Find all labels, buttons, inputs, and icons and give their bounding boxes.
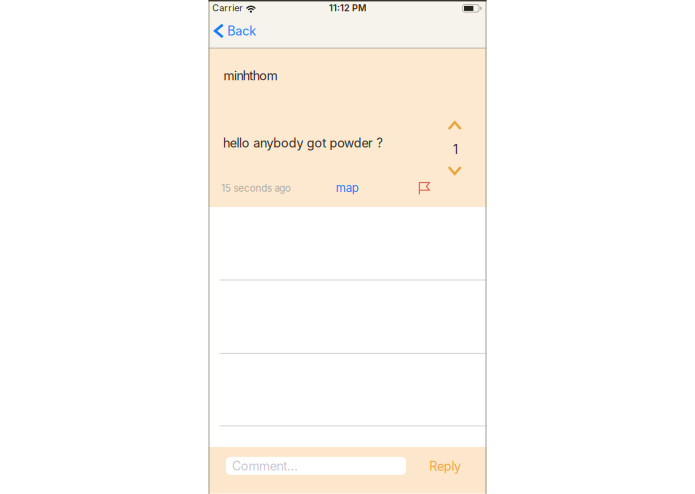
button[interactable]: Upvote — [449, 122, 461, 129]
staticText: Comment... — [232, 458, 298, 473]
staticText: 11:12 PM — [329, 2, 366, 13]
button[interactable]: Downvote — [449, 167, 461, 174]
staticText: map — [336, 181, 359, 195]
button[interactable]: Reply — [429, 459, 461, 474]
staticText: 15 seconds ago — [221, 182, 291, 194]
button[interactable]: map — [336, 181, 359, 195]
staticText: hello anybody got powder ? — [223, 135, 382, 150]
staticText: Carrier — [212, 2, 242, 13]
staticText: minhthom — [223, 68, 278, 83]
button[interactable]: Comment — [226, 457, 406, 475]
staticText: Back — [227, 23, 256, 38]
button[interactable]: Flag — [419, 182, 430, 194]
staticText: 1 — [453, 142, 458, 157]
staticText: Reply — [429, 459, 461, 474]
button[interactable]: Back — [215, 23, 256, 38]
